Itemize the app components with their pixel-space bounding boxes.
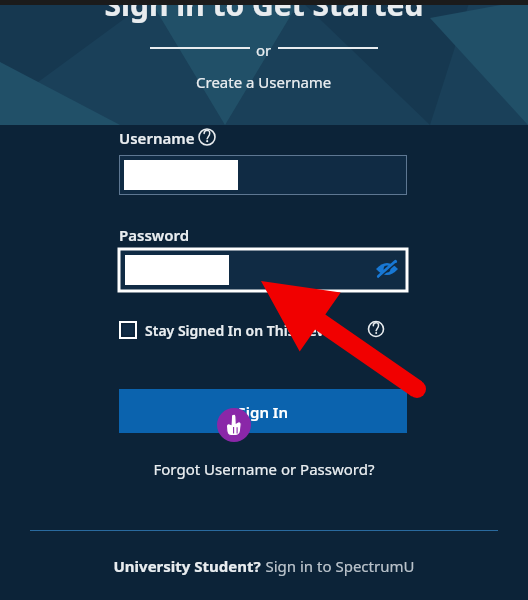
button[interactable]: Forgot Username or Password? (152, 458, 376, 482)
button[interactable]: Create a Username (199, 70, 329, 94)
button[interactable]: Password field (119, 249, 407, 291)
button[interactable]: Sign in to SpectrumU (259, 555, 411, 577)
button[interactable]: Sign In (119, 389, 407, 433)
button[interactable]: Show password (372, 254, 404, 286)
button[interactable]: Username field (119, 155, 407, 195)
button[interactable]: Stay Signed In on This Device (119, 318, 389, 342)
